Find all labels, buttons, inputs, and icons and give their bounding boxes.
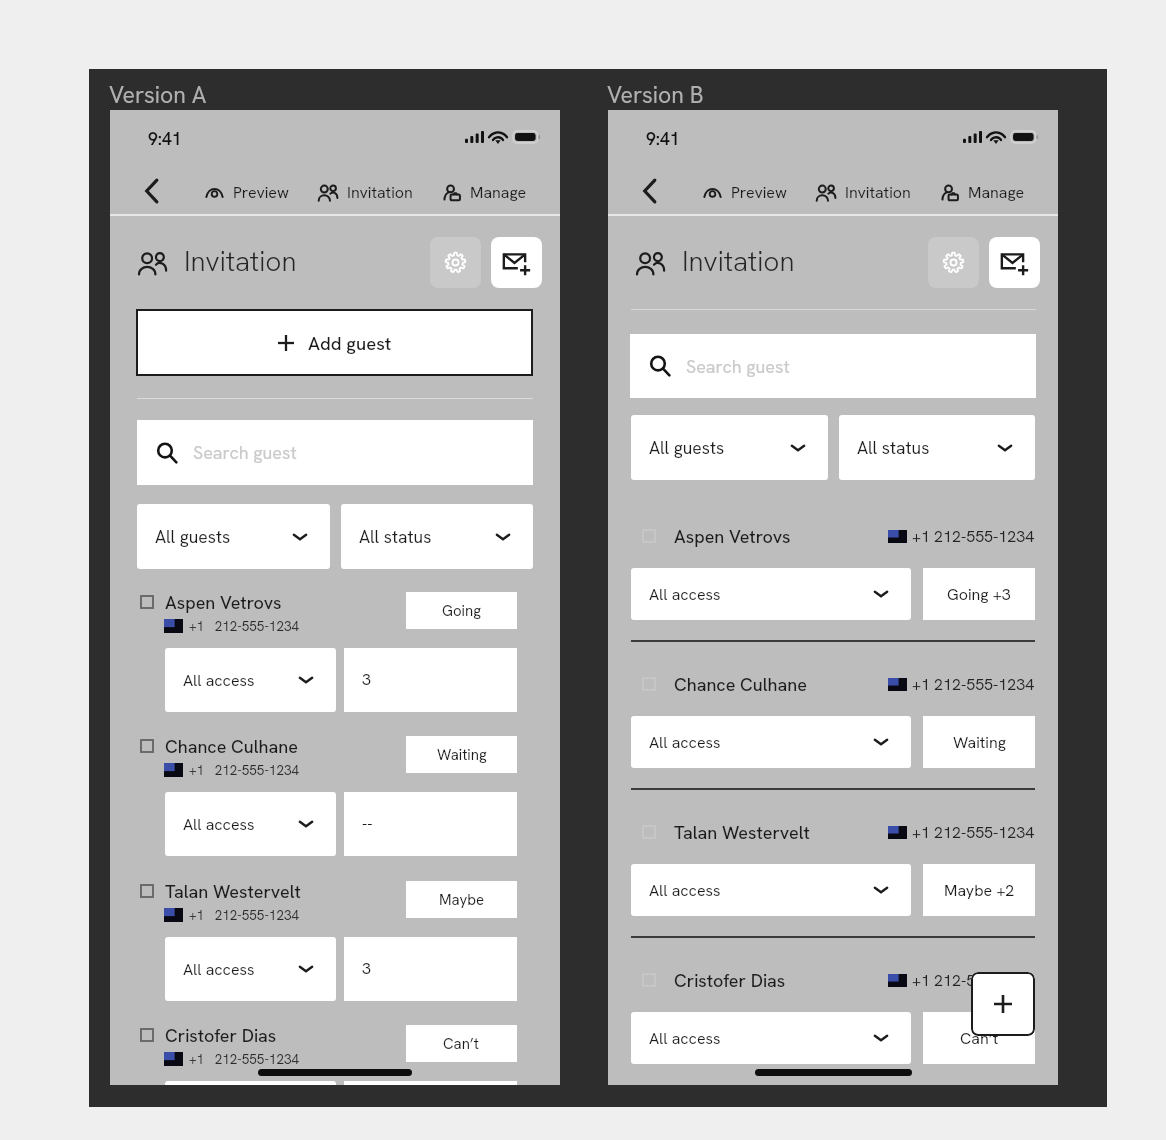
staticText: Maybe	[439, 890, 485, 910]
staticText: Add guest	[308, 331, 392, 355]
staticText: Maybe +2	[944, 880, 1015, 901]
staticText: All access	[649, 880, 721, 901]
button[interactable]: All access	[165, 1081, 336, 1085]
button[interactable]: All guests	[137, 504, 330, 569]
staticText: 9:41	[148, 127, 182, 150]
button[interactable]: Search guest	[137, 420, 533, 485]
staticText: Invitation	[682, 243, 795, 279]
staticText: All status	[857, 436, 930, 459]
button[interactable]: All access	[631, 716, 911, 768]
button[interactable]: All access	[631, 864, 911, 916]
staticText: All access	[649, 584, 721, 605]
button[interactable]: Settings	[430, 237, 481, 288]
button[interactable]: Preview	[704, 180, 787, 204]
button[interactable]: Invitation	[318, 180, 413, 204]
staticText: +1 212-555-1234	[912, 674, 1035, 695]
button[interactable]: Can’t	[406, 1025, 517, 1062]
staticText: +1 212-555-1234	[189, 761, 300, 779]
button[interactable]: Invitation	[816, 180, 911, 204]
button[interactable]: All status	[839, 415, 1035, 480]
button[interactable]: Manage	[941, 180, 1025, 204]
staticText: +1 212-555-1234	[912, 526, 1035, 547]
staticText: Going +3	[947, 584, 1011, 605]
staticText: Invitation	[347, 182, 413, 203]
button[interactable]: Going	[406, 592, 517, 629]
staticText: Preview	[731, 182, 787, 203]
staticText: Cristofer Dias	[674, 969, 786, 992]
button[interactable]: Back	[141, 178, 163, 204]
staticText: All access	[183, 670, 255, 691]
button[interactable]	[344, 648, 517, 712]
button[interactable]: Settings	[928, 237, 979, 288]
staticText: All access	[649, 1028, 721, 1049]
staticText: Aspen Vetrovs	[165, 591, 282, 614]
staticText: Waiting	[437, 745, 487, 765]
button[interactable]: All access	[165, 648, 336, 712]
button[interactable]: Maybe +2	[923, 864, 1035, 916]
staticText: All guests	[155, 525, 231, 548]
button[interactable]: All access	[631, 568, 911, 620]
staticText: Can’t	[443, 1034, 480, 1054]
button[interactable]: Going +3	[923, 568, 1035, 620]
staticText: Search guest	[193, 441, 297, 464]
staticText: +1 212-555-1234	[912, 822, 1035, 843]
staticText: +1 212-555-1234	[189, 617, 300, 635]
staticText: Version B	[607, 80, 704, 110]
staticText: All access	[649, 732, 721, 753]
staticText: Manage	[470, 182, 527, 203]
staticText: +1 212-555-1234	[189, 906, 300, 924]
staticText: Waiting	[953, 732, 1006, 753]
staticText: Preview	[233, 182, 289, 203]
button[interactable]: Add guest	[136, 309, 533, 376]
button[interactable]: Waiting	[406, 736, 517, 773]
staticText: 3	[362, 669, 371, 690]
button[interactable]: Waiting	[923, 716, 1035, 768]
staticText: +1 212-555-1234	[189, 1050, 300, 1068]
staticText: Talan Westervelt	[674, 821, 810, 844]
button[interactable]	[344, 937, 517, 1001]
staticText: Invitation	[184, 243, 297, 279]
button[interactable]: Can’t	[923, 1012, 1035, 1064]
button[interactable]: Invite guest by email	[491, 237, 542, 288]
staticText: Version A	[109, 80, 207, 110]
staticText: Search guest	[686, 355, 790, 378]
staticText: Chance Culhane	[674, 673, 808, 696]
staticText: Going	[442, 601, 481, 621]
staticText: All guests	[649, 436, 725, 459]
staticText: All status	[359, 525, 432, 548]
button[interactable]: All access	[165, 937, 336, 1001]
button[interactable]: Maybe	[406, 881, 517, 918]
staticText: Invitation	[845, 182, 911, 203]
staticText: +1 212-555-1234	[912, 970, 1035, 991]
staticText: 3	[362, 958, 371, 979]
staticText: All access	[183, 814, 255, 835]
button[interactable]: All status	[341, 504, 533, 569]
button[interactable]: All access	[165, 792, 336, 856]
button[interactable]: Add guest	[971, 972, 1035, 1036]
button[interactable]: Invite guest by email	[989, 237, 1040, 288]
button[interactable]: Search guest	[630, 334, 1036, 398]
staticText: Cristofer Dias	[165, 1024, 277, 1047]
staticText: All access	[183, 959, 255, 980]
button[interactable]: Back	[639, 178, 661, 204]
staticText: Aspen Vetrovs	[674, 525, 791, 548]
button[interactable]: Manage	[443, 180, 527, 204]
button[interactable]: Preview	[206, 180, 289, 204]
staticText: Talan Westervelt	[165, 880, 301, 903]
staticText: Chance Culhane	[165, 735, 299, 758]
staticText: Can’t	[960, 1028, 999, 1049]
button[interactable]: All guests	[631, 415, 828, 480]
button[interactable]: All access	[631, 1012, 911, 1064]
staticText: --	[362, 813, 373, 834]
button[interactable]	[344, 792, 517, 856]
staticText: 9:41	[646, 127, 680, 150]
staticText: Manage	[968, 182, 1025, 203]
